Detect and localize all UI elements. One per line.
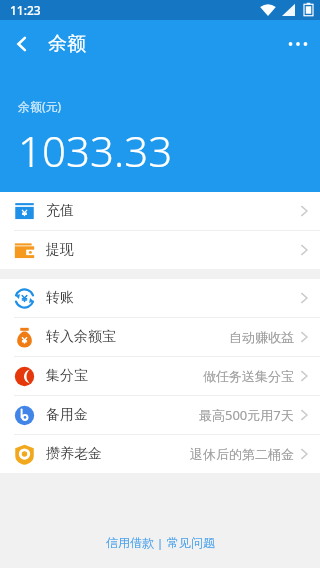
staticText: 提现 (46, 241, 74, 259)
staticText: 转账 (46, 289, 74, 307)
staticText: 余额(元) (18, 98, 62, 114)
button[interactable]: More options (276, 22, 320, 66)
button[interactable]: 集分宝 (0, 357, 320, 395)
staticText: 余额 (48, 32, 86, 56)
staticText: 1033.33 (18, 122, 173, 179)
staticText: 转入余额宝 (46, 328, 116, 346)
button[interactable]: 提现 (0, 231, 320, 269)
staticText: 充值 (46, 202, 74, 220)
staticText: 集分宝 (46, 367, 88, 385)
staticText: 做任务送集分宝 (203, 368, 294, 384)
staticText: 备用金 (46, 406, 88, 424)
button[interactable]: 转入余额宝 (0, 318, 320, 356)
staticText: 退休后的第二桶金 (190, 446, 294, 462)
button[interactable]: 充值 (0, 192, 320, 230)
button[interactable]: 攒养老金 (0, 435, 320, 473)
staticText: | (157, 535, 164, 550)
staticText: 11:23 (10, 2, 41, 18)
button[interactable]: 信用借款 (103, 531, 157, 554)
button[interactable]: 转账 (0, 279, 320, 317)
button[interactable]: 备用金 (0, 396, 320, 434)
staticText: 攒养老金 (46, 445, 102, 463)
button[interactable]: Back (0, 22, 44, 66)
staticText: 最高500元用7天 (199, 406, 294, 424)
staticText: 自动赚收益 (229, 329, 294, 345)
button[interactable]: 常见问题 (164, 531, 218, 554)
